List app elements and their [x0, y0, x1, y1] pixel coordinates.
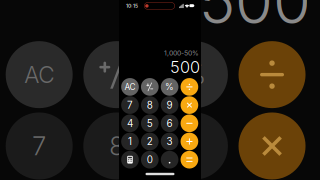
staticText: 7	[127, 99, 133, 111]
button[interactable]: Add	[181, 133, 198, 150]
button[interactable]: Toggle sign	[141, 78, 159, 96]
staticText: 500	[199, 0, 311, 38]
staticText: 9	[167, 99, 173, 111]
button[interactable]: Equals	[181, 151, 198, 168]
staticText: 0	[147, 154, 153, 166]
button[interactable]: Five	[141, 114, 159, 132]
staticText: 4	[127, 117, 133, 129]
button[interactable]: Percent	[161, 78, 178, 96]
button[interactable]: All clear	[121, 78, 139, 96]
button[interactable]: Seven	[121, 96, 139, 114]
staticText: %	[183, 59, 206, 90]
staticText: 10:15	[126, 3, 138, 9]
staticText: 5	[147, 117, 153, 129]
staticText: 1	[128, 135, 132, 147]
staticText: 2	[147, 135, 153, 147]
staticText: 3	[167, 135, 173, 147]
button[interactable]: Subtract	[181, 114, 198, 132]
staticText: AC	[24, 61, 54, 88]
button[interactable]: One	[121, 133, 139, 150]
staticText: %	[165, 82, 174, 92]
button[interactable]: Multiply	[181, 96, 198, 114]
button[interactable]: Calculator mode	[121, 151, 139, 168]
button[interactable]: Two	[141, 133, 159, 150]
staticText: 8	[147, 99, 153, 111]
button[interactable]: Three	[161, 133, 178, 150]
staticText: 7	[32, 131, 46, 161]
staticText: 6	[167, 117, 173, 129]
button[interactable]: Divide	[181, 78, 198, 96]
button[interactable]: Six	[161, 114, 178, 132]
button[interactable]: Eight	[141, 96, 159, 114]
staticText: 9	[187, 131, 202, 161]
button[interactable]: Decimal point	[161, 151, 178, 168]
staticText: 8	[109, 131, 124, 161]
button[interactable]: Nine	[161, 96, 178, 114]
staticText: 500	[170, 57, 200, 77]
button[interactable]: Four	[121, 114, 139, 132]
staticText: AC	[124, 82, 135, 92]
button[interactable]: Zero	[141, 151, 159, 168]
staticText: 1,000-50%	[164, 49, 199, 57]
